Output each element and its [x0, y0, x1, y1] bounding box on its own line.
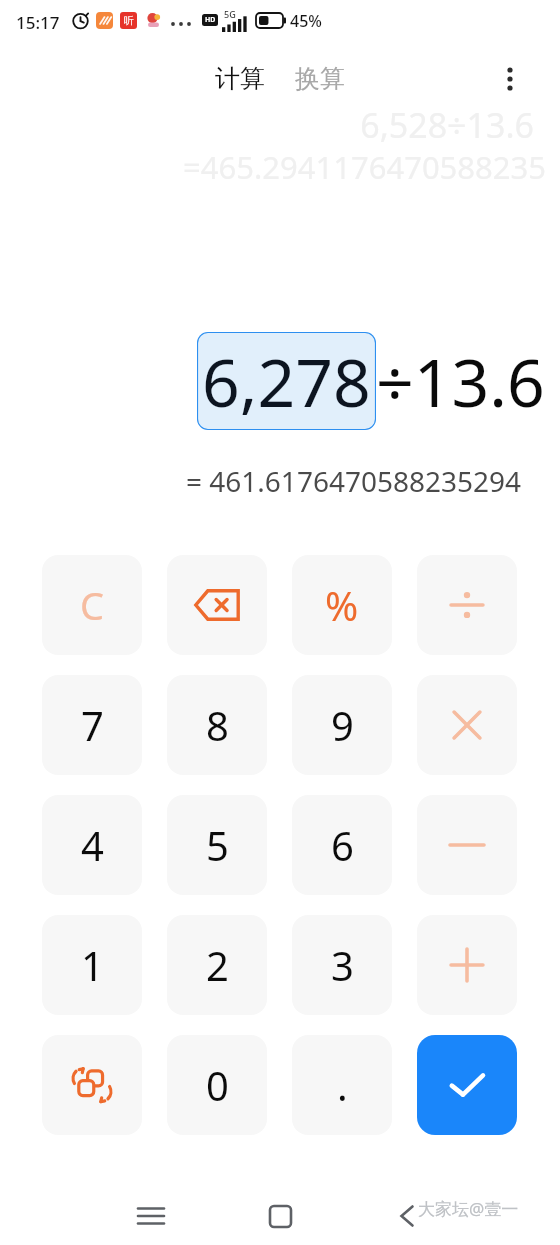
staticText: 5 [206, 818, 229, 872]
staticText: 换算 [295, 63, 345, 94]
staticText: C [80, 579, 105, 631]
button[interactable]: Plus [417, 915, 517, 1015]
staticText: . [337, 1058, 348, 1112]
button[interactable]: Home [251, 1187, 309, 1245]
button[interactable]: % [292, 555, 392, 655]
staticText: 7 [81, 698, 104, 752]
button[interactable]: 6,278 [197, 332, 376, 430]
staticText: 6,278 [202, 336, 371, 426]
button[interactable]: 5 [167, 795, 267, 895]
staticText: 6 [331, 818, 354, 872]
button[interactable]: Minus [417, 795, 517, 895]
button[interactable]: Equals [417, 1035, 517, 1135]
button[interactable]: 0 [167, 1035, 267, 1135]
button[interactable]: Convert units [42, 1035, 142, 1135]
staticText: 3 [331, 938, 354, 992]
button[interactable]: 7 [42, 675, 142, 775]
button[interactable]: 3 [292, 915, 392, 1015]
staticText: 听 [124, 14, 134, 27]
button[interactable]: 9 [292, 675, 392, 775]
staticText: 计算 [215, 63, 265, 94]
staticText: 5G [224, 8, 236, 20]
staticText: 4 [81, 818, 104, 872]
button[interactable]: 2 [167, 915, 267, 1015]
button[interactable]: C [42, 555, 142, 655]
staticText: 45% [290, 10, 322, 32]
button[interactable]: Recent apps [122, 1187, 180, 1245]
staticText: 2 [206, 938, 229, 992]
staticText: ÷13.6 [376, 336, 545, 426]
button[interactable]: Divide [417, 555, 517, 655]
button[interactable]: Backspace [167, 555, 267, 655]
staticText: % [325, 578, 359, 632]
staticText: 大家坛@壹一 [418, 1197, 519, 1220]
staticText: 6,528÷13.6 [360, 102, 534, 148]
button[interactable]: 1 [42, 915, 142, 1015]
staticText: 15:17 [16, 11, 60, 34]
staticText: 9 [331, 698, 354, 752]
button[interactable]: Back [378, 1187, 436, 1245]
staticText: 8 [206, 698, 229, 752]
staticText: HD [205, 15, 216, 25]
staticText: = 461.6176470588235294 [186, 462, 522, 500]
button[interactable]: 换算 [287, 57, 353, 100]
button[interactable]: Multiply [417, 675, 517, 775]
button[interactable]: More options [490, 58, 530, 98]
button[interactable]: 6 [292, 795, 392, 895]
staticText: 1 [81, 938, 104, 992]
button[interactable]: 计算 [207, 57, 273, 100]
button[interactable]: . [292, 1035, 392, 1135]
button[interactable]: 4 [42, 795, 142, 895]
button[interactable]: 8 [167, 675, 267, 775]
staticText: 0 [206, 1058, 229, 1112]
staticText: =465.2941176470588235 [183, 146, 546, 188]
